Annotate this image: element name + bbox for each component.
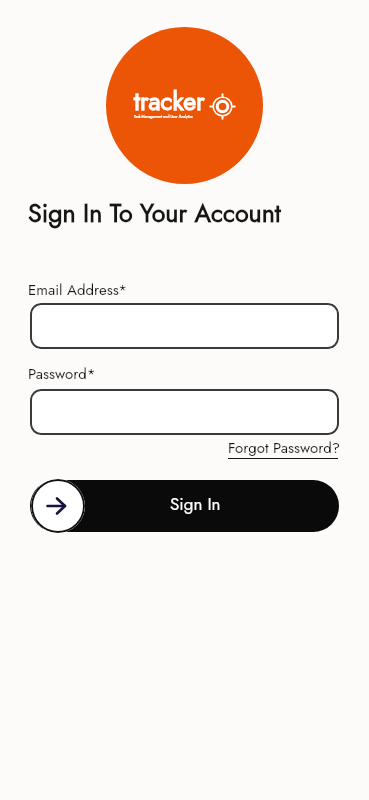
staticText: Email Address* <box>28 279 128 301</box>
staticText: Password* <box>28 363 96 385</box>
button[interactable] <box>30 480 339 532</box>
button[interactable] <box>30 389 339 435</box>
staticText: Task Management and User Analytics <box>134 114 193 119</box>
staticText: Sign In To Your Account <box>28 195 281 231</box>
staticText: tracker <box>134 83 205 119</box>
button[interactable]: Forgot Password? <box>228 437 341 459</box>
button[interactable] <box>30 303 339 349</box>
staticText: Sign In <box>170 492 221 517</box>
